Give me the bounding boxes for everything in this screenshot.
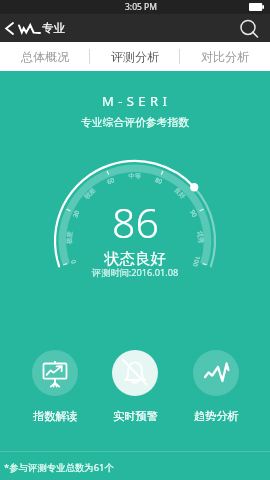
button[interactable]: 对比分析 <box>180 42 270 71</box>
button[interactable]: 评测分析 <box>90 42 180 71</box>
staticText: 趋势分析 <box>194 409 239 423</box>
staticText: 专业综合评价参考指数 <box>81 116 189 130</box>
staticText: 评测时间:2016.01.08 <box>92 266 179 279</box>
button[interactable]: Back <box>0 14 19 42</box>
staticText: 实时预警 <box>113 409 158 423</box>
staticText: 对比分析 <box>201 49 249 64</box>
staticText: 评测分析 <box>111 49 159 64</box>
staticText: *参与评测专业总数为61个 <box>4 461 114 474</box>
button[interactable]: 总体概况 <box>0 42 90 71</box>
staticText: M-SERI <box>102 92 172 110</box>
staticText: 86 <box>112 194 159 250</box>
button[interactable]: Search <box>234 14 270 42</box>
button[interactable]: 指数解读 <box>25 350 85 423</box>
button[interactable]: 实时预警 <box>105 350 165 423</box>
staticText: 专业 <box>42 21 65 35</box>
button[interactable]: 趋势分析 <box>186 350 246 423</box>
staticText: 3:05 PM <box>125 1 157 13</box>
staticText: 指数解读 <box>33 409 78 423</box>
staticText: 状态良好 <box>104 249 166 269</box>
staticText: 总体概况 <box>21 49 69 64</box>
